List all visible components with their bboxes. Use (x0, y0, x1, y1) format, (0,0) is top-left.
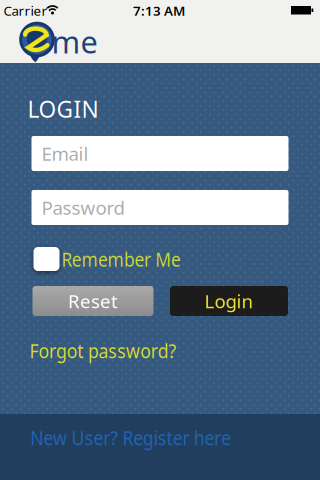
staticText: 7:13 AM (133, 2, 185, 19)
staticText: Login (204, 289, 253, 313)
button[interactable]: Login (170, 286, 288, 316)
button[interactable]: Forgot password? (20, 337, 186, 364)
button[interactable]: Email (31, 136, 288, 171)
staticText: Reset (68, 289, 118, 313)
button[interactable]: Reset (32, 286, 153, 316)
button[interactable]: Remember Me (33, 247, 59, 271)
button[interactable]: New User? Register here (0, 414, 320, 480)
staticText: Remember Me (52, 246, 189, 272)
staticText: me (51, 21, 97, 62)
staticText: Password (41, 195, 124, 220)
button[interactable]: Password (31, 190, 288, 225)
staticText: Carrier (3, 2, 47, 19)
staticText: LOGIN (27, 94, 98, 124)
staticText: Email (41, 141, 88, 166)
staticText: Forgot password? (20, 337, 186, 364)
staticText: New User? Register here (16, 424, 244, 451)
